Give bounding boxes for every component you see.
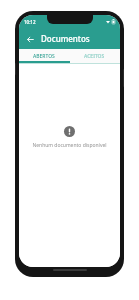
staticText: ACEITOS bbox=[84, 53, 105, 60]
button[interactable]: Voltar bbox=[23, 32, 37, 46]
staticText: Documentos bbox=[41, 33, 90, 44]
staticText: 10:12 bbox=[24, 19, 36, 25]
button[interactable]: ACEITOS bbox=[69, 49, 120, 63]
button[interactable]: ABERTOS bbox=[19, 49, 69, 63]
staticText: Nenhum documento disponível bbox=[32, 142, 107, 149]
staticText: ABERTOS bbox=[33, 53, 55, 60]
